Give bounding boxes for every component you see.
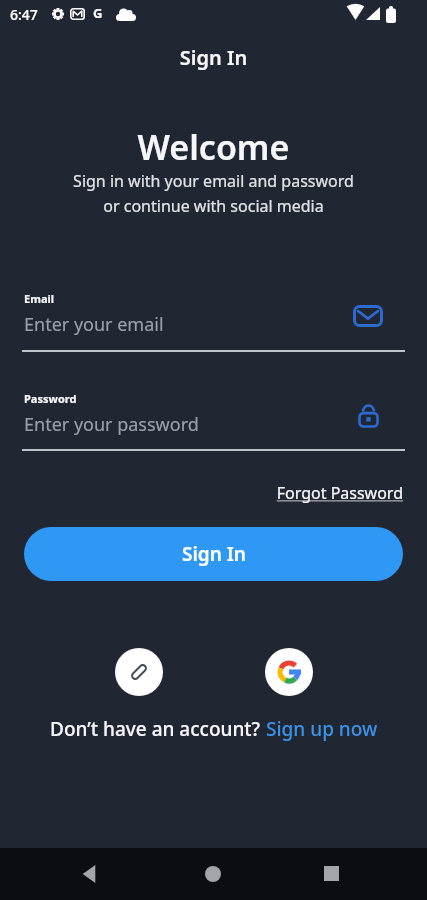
staticText: Password [24,391,77,406]
staticText: Sign In [0,44,427,71]
button[interactable]: Sign up now [266,716,378,742]
button[interactable] [265,648,313,696]
button[interactable] [80,865,98,883]
staticText: Enter your email [24,312,164,337]
button[interactable] [115,648,163,696]
staticText: Enter your password [24,412,199,437]
button[interactable]: Forgot Password [0,482,403,504]
staticText: Sign in with your email and password or … [0,170,427,216]
staticText: Sign In [182,541,246,567]
button[interactable] [204,865,222,883]
button[interactable]: Sign In [24,527,403,581]
staticText: Welcome [0,124,427,170]
staticText: 6:47 [10,5,38,24]
staticText: Don’t have an account? [50,716,266,742]
staticText: G [93,4,103,22]
staticText: Email [24,291,55,306]
